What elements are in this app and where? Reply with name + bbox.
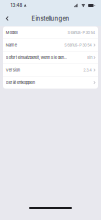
button[interactable]: Back xyxy=(0,11,13,26)
staticText: Seanus-P3054 xyxy=(64,43,92,47)
staticText: Einstellungen xyxy=(31,15,69,22)
staticText: Sofort einsatzbereit, wenn Sie den... xyxy=(6,55,67,60)
staticText: Seanus-P3054 xyxy=(67,30,95,35)
staticText: Ein xyxy=(87,55,92,60)
staticText: Name xyxy=(6,43,17,47)
button[interactable]: Sofort einsatzbereit, wenn Sie den... xyxy=(3,51,98,64)
staticText: Gerät entkoppeln xyxy=(6,80,35,85)
staticText: 13:48 xyxy=(10,3,22,8)
button[interactable]: Version xyxy=(3,64,98,76)
staticText: Version xyxy=(6,68,20,72)
button[interactable]: Name xyxy=(3,39,98,51)
button[interactable]: Gerät entkoppeln xyxy=(3,76,98,89)
button[interactable]: Modell xyxy=(3,26,98,39)
staticText: Modell xyxy=(6,30,18,35)
staticText: 2.3.4 xyxy=(83,68,92,72)
